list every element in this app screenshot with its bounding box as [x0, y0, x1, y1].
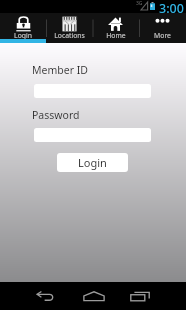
- staticText: Login: [78, 155, 107, 170]
- staticText: 3G: [136, 0, 143, 7]
- staticText: More: [154, 31, 171, 40]
- button[interactable]: Home: [77, 284, 111, 308]
- button[interactable]: Home: [92, 13, 139, 43]
- staticText: Login: [14, 31, 32, 40]
- staticText: Locations: [54, 31, 85, 40]
- button[interactable]: Locations: [46, 13, 92, 43]
- button[interactable]: Recent apps: [123, 284, 157, 308]
- button[interactable]: Login: [57, 153, 128, 172]
- button[interactable]: Login: [0, 13, 46, 43]
- staticText: Password: [32, 108, 80, 122]
- staticText: Home: [106, 31, 126, 40]
- button[interactable]: Back: [28, 284, 62, 308]
- staticText: Member ID: [32, 63, 88, 77]
- button[interactable]: More: [139, 13, 186, 43]
- staticText: 3:00: [159, 0, 184, 13]
